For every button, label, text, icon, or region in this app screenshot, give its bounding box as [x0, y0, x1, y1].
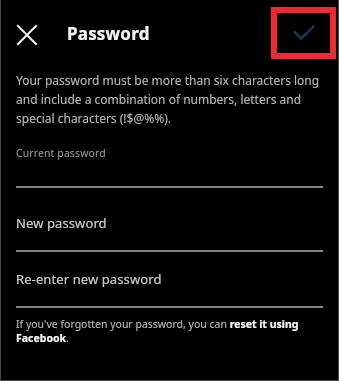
- button[interactable]: Re-enter new password: [0, 270, 339, 308]
- staticText: Current password: [16, 146, 106, 160]
- staticText: Your password must be more than six char…: [16, 72, 321, 126]
- button[interactable]: Current password: [0, 142, 339, 188]
- staticText: If you've forgotten your password, you c…: [16, 317, 321, 345]
- button[interactable]: If you've forgotten your password, you c…: [16, 317, 321, 345]
- button[interactable]: New password: [0, 214, 339, 252]
- button[interactable]: Save password: [271, 7, 336, 59]
- staticText: Password: [67, 22, 150, 45]
- staticText: New password: [16, 214, 107, 232]
- staticText: Re-enter new password: [16, 270, 162, 288]
- button[interactable]: Close: [8, 16, 46, 54]
